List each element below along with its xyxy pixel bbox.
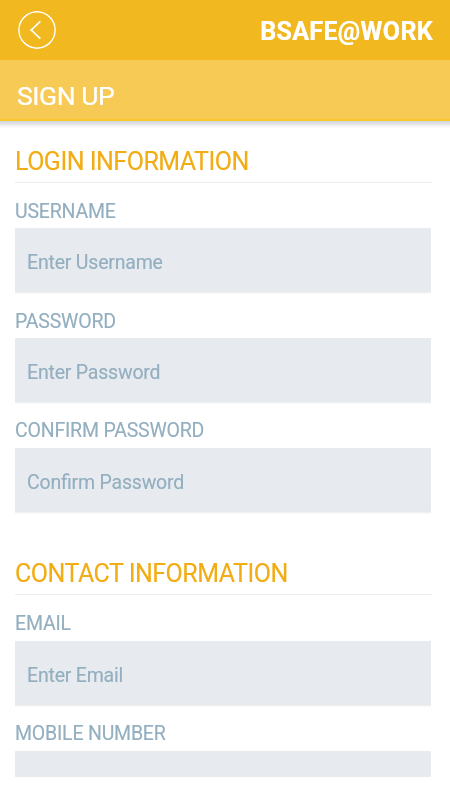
button[interactable]: Enter Password (15, 338, 431, 401)
staticText: SIGN UP (17, 80, 115, 111)
staticText: LOGIN INFORMATION (15, 147, 249, 176)
staticText: MOBILE NUMBER (15, 722, 166, 745)
staticText: BSAFE@WORK (260, 17, 433, 46)
staticText: USERNAME (15, 200, 116, 223)
staticText: Enter Password (27, 361, 161, 384)
staticText: Confirm Password (27, 471, 185, 494)
button[interactable]: Enter Email (15, 641, 431, 704)
staticText: EMAIL (15, 612, 71, 635)
staticText: Enter Mobile Number (27, 774, 207, 797)
button[interactable]: Enter Username (15, 228, 431, 291)
staticText: CONFIRM PASSWORD (15, 419, 205, 442)
staticText: CONTACT INFORMATION (15, 559, 288, 588)
button[interactable]: Back (18, 11, 56, 49)
button[interactable]: Enter Mobile Number (15, 751, 431, 800)
staticText: Enter Username (27, 251, 163, 274)
staticText: Enter Email (27, 664, 124, 687)
button[interactable]: Confirm Password (15, 448, 431, 511)
staticText: PASSWORD (15, 310, 116, 333)
